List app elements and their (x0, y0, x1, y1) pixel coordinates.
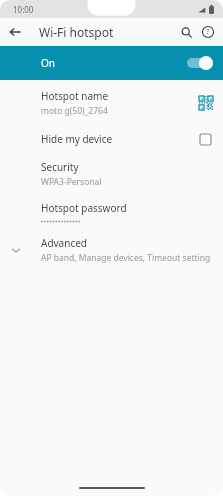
staticText: ? (206, 27, 210, 37)
staticText: 10:00 (13, 4, 34, 15)
button[interactable]: Advanced (0, 231, 223, 269)
staticText: WPA3-Personal (41, 176, 102, 188)
button[interactable]: Share hotspot QR code (195, 92, 217, 114)
button[interactable]: Hotspot name (0, 84, 223, 122)
button[interactable]: Hide my device, off (195, 129, 215, 149)
button[interactable]: Search (175, 21, 197, 43)
button[interactable]: Hotspot password (0, 193, 223, 231)
staticText: Wi-Fi hotspot (39, 24, 114, 40)
staticText: AP band, Manage devices, Timeout setting (41, 252, 211, 264)
staticText: Security (41, 160, 79, 174)
button[interactable]: Back (5, 22, 25, 42)
staticText: On (41, 56, 55, 70)
button[interactable]: On (0, 46, 223, 80)
button[interactable]: Hide my device (0, 122, 223, 155)
staticText: Hide my device (41, 132, 113, 146)
button[interactable]: Home (79, 487, 145, 489)
button[interactable]: Security (0, 155, 223, 193)
staticText: Advanced (41, 236, 87, 250)
staticText: Hotspot name (41, 89, 109, 103)
staticText: Hotspot password (41, 201, 127, 215)
staticText: moto g(50)_2764 (41, 105, 108, 117)
button[interactable]: Help (197, 21, 219, 43)
